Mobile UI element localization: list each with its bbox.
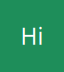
staticText: Hi [20, 21, 43, 51]
